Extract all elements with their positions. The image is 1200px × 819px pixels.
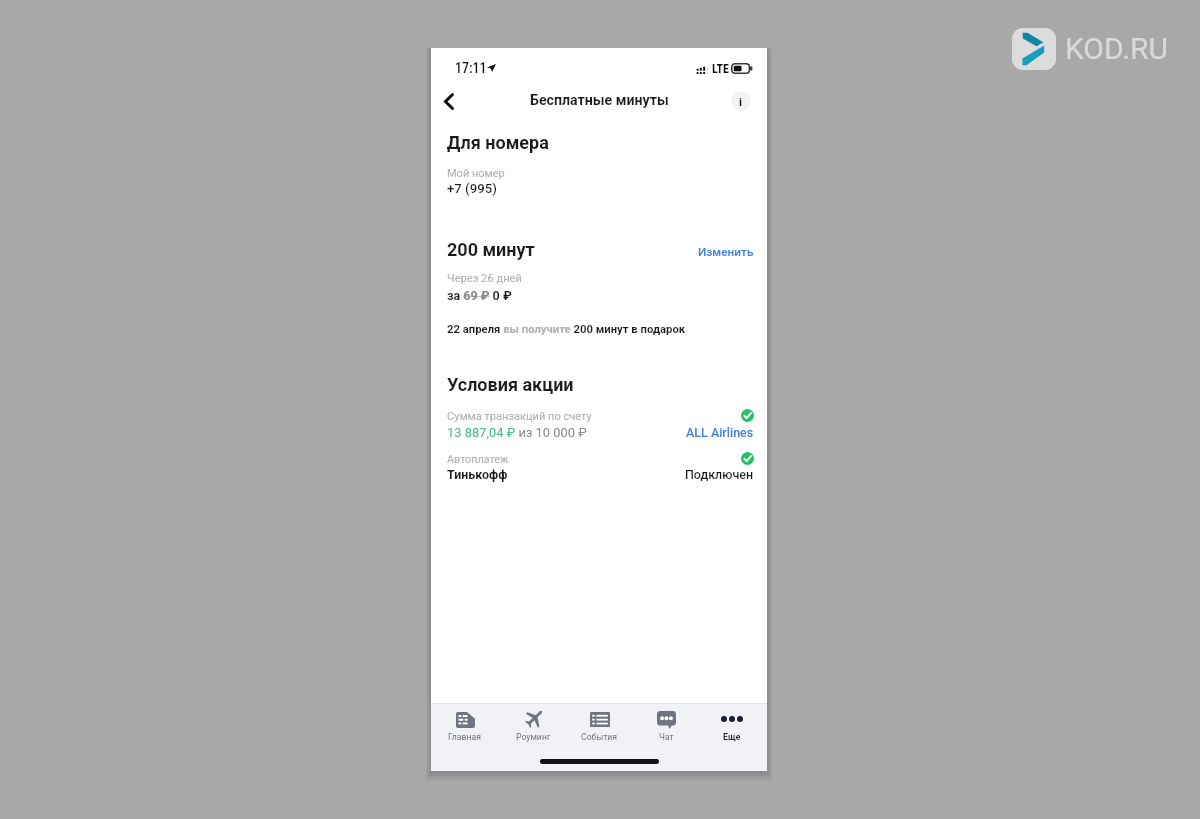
button[interactable]: ALL Airlines xyxy=(686,425,754,440)
staticText: Для номера xyxy=(447,132,549,153)
staticText: LTE xyxy=(712,62,729,76)
staticText: Роуминг xyxy=(516,732,551,742)
staticText: Бесплатные минуты xyxy=(530,92,669,109)
staticText: Главная xyxy=(448,732,482,742)
button[interactable]: Главная xyxy=(435,710,495,750)
staticText: +7 (995) xyxy=(447,181,497,196)
button[interactable]: События xyxy=(569,710,629,750)
staticText: 13 887,04 ₽ из 10 000 ₽ xyxy=(447,425,587,440)
button[interactable]: Информация xyxy=(731,91,751,111)
staticText: Мой номер xyxy=(447,167,505,180)
button[interactable]: Изменить xyxy=(698,245,754,259)
button[interactable]: Чат xyxy=(636,710,696,750)
staticText: Чат xyxy=(659,732,674,742)
staticText: Еще xyxy=(723,732,741,742)
staticText: Автоплатеж xyxy=(447,453,509,466)
staticText: События xyxy=(581,732,618,742)
staticText: Условия акции xyxy=(447,374,574,395)
button[interactable]: Назад xyxy=(436,86,462,116)
staticText: 17:11 xyxy=(455,60,487,76)
staticText: за 69 ₽ 0 ₽ xyxy=(447,288,512,303)
button[interactable]: Еще xyxy=(702,710,762,750)
staticText: Подключен xyxy=(685,467,754,482)
staticText: Тинькофф xyxy=(447,467,508,482)
staticText: Через 26 дней xyxy=(447,272,522,285)
staticText: 200 минут xyxy=(447,239,535,260)
staticText: 22 апреля вы получите 200 минут в подаро… xyxy=(447,323,686,336)
staticText: KOD.RU xyxy=(1065,31,1169,66)
staticText: Сумма транзакций по счету xyxy=(447,410,592,423)
staticText: i xyxy=(739,95,743,108)
button[interactable]: Роуминг xyxy=(503,710,563,750)
